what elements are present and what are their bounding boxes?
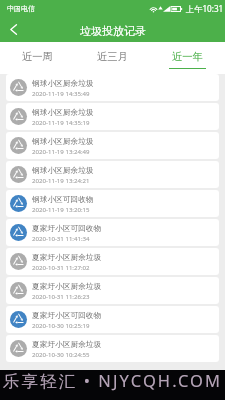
staticText: 近三月 — [97, 50, 128, 63]
button[interactable]: 夏家圩小区可回收物 — [6, 306, 219, 333]
button[interactable]: 夏家圩小区可回收物 — [6, 219, 219, 246]
staticText: 垃圾投放记录 — [80, 24, 146, 38]
button[interactable]: 夏家圩小区厨余垃圾 — [6, 248, 219, 275]
staticText: 2020-11-19 13:24:21 — [32, 176, 90, 184]
staticText: 2020-10-31 11:41:34 — [32, 234, 90, 242]
button[interactable]: 返回 — [0, 17, 27, 42]
staticText: 2020-11-19 13:20:15 — [32, 205, 90, 213]
staticText: 上午10:31 — [186, 3, 224, 14]
staticText: 钢球小区可回收物 — [32, 195, 94, 205]
staticText: 中国电信 — [7, 4, 35, 13]
staticText: 近一周 — [22, 50, 53, 63]
button[interactable]: 钢球小区可回收物 — [6, 190, 219, 217]
staticText: 钢球小区厨余垃圾 — [32, 79, 94, 89]
staticText: 2020-11-19 14:35:19 — [32, 118, 90, 126]
staticText: 钢球小区厨余垃圾 — [32, 166, 94, 176]
staticText: 钢球小区厨余垃圾 — [32, 137, 94, 147]
staticText: 2020-10-30 10:25:19 — [32, 321, 90, 329]
button[interactable]: 近三月 — [75, 42, 150, 74]
staticText: 2020-10-30 10:24:55 — [32, 350, 90, 358]
staticText: 夏家圩小区厨余垃圾 — [32, 253, 102, 263]
staticText: 2020-10-31 11:26:23 — [32, 292, 90, 300]
button[interactable]: 钢球小区厨余垃圾 — [6, 132, 219, 159]
staticText: 2020-11-19 13:24:49 — [32, 147, 90, 155]
staticText: 乐享轻汇 • NJYCQH.COM — [0, 369, 225, 392]
staticText: 钢球小区厨余垃圾 — [32, 108, 94, 118]
staticText: 近一年 — [172, 50, 203, 63]
button[interactable]: 夏家圩小区厨余垃圾 — [6, 277, 219, 304]
button[interactable]: 钢球小区厨余垃圾 — [6, 74, 219, 101]
staticText: 夏家圩小区可回收物 — [32, 224, 102, 234]
button[interactable]: 近一年 — [150, 42, 225, 74]
button[interactable]: 钢球小区厨余垃圾 — [6, 161, 219, 188]
staticText: 2020-11-19 14:35:49 — [32, 89, 90, 97]
button[interactable]: 夏家圩小区厨余垃圾 — [6, 335, 219, 362]
staticText: 夏家圩小区可回收物 — [32, 311, 102, 321]
staticText: 夏家圩小区厨余垃圾 — [32, 340, 102, 350]
staticText: 夏家圩小区厨余垃圾 — [32, 282, 102, 292]
button[interactable]: 近一周 — [0, 42, 75, 74]
staticText: 2020-10-31 11:27:02 — [32, 263, 90, 271]
button[interactable]: 钢球小区厨余垃圾 — [6, 103, 219, 130]
